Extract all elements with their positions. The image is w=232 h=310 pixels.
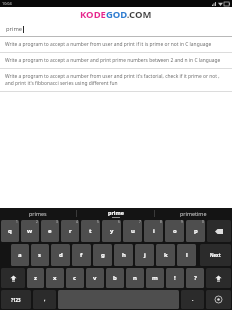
staticText: primetime: [180, 210, 207, 217]
staticText: 5: [97, 220, 99, 224]
staticText: ,: [44, 296, 46, 303]
staticText: 8: [160, 220, 162, 224]
button[interactable]: d: [51, 244, 70, 266]
button[interactable]: c: [66, 268, 84, 288]
button[interactable]: x: [46, 268, 64, 288]
button[interactable]: o: [165, 220, 184, 242]
button[interactable]: .: [181, 290, 204, 309]
staticText: l: [186, 251, 188, 259]
button[interactable]: f: [72, 244, 91, 266]
button[interactable]: n: [126, 268, 144, 288]
staticText: t: [89, 227, 92, 235]
button[interactable]: r: [61, 220, 79, 242]
button[interactable]: prime: [0, 22, 232, 37]
button[interactable]: Write a program to accept a number from …: [0, 69, 232, 92]
staticText: k: [164, 251, 168, 259]
staticText: x: [53, 274, 57, 282]
button[interactable]: ,: [33, 290, 56, 309]
staticText: i: [153, 227, 155, 235]
button[interactable]: Write a program to accept a number from …: [0, 37, 232, 53]
button[interactable]: Write a program to accept a number and p…: [0, 53, 232, 69]
button[interactable]: a: [11, 244, 29, 266]
staticText: p: [194, 227, 198, 235]
button[interactable]: t: [81, 220, 100, 242]
staticText: s: [38, 251, 42, 259]
staticText: Write a program to accept a number and p…: [5, 57, 221, 64]
staticText: 1: [16, 220, 18, 224]
staticText: m: [152, 274, 158, 282]
button[interactable]: primes: [0, 208, 76, 219]
staticText: o: [173, 227, 177, 235]
button[interactable]: g: [93, 244, 112, 266]
staticText: 7: [139, 220, 141, 224]
staticText: n: [133, 274, 137, 282]
staticText: 10:04: [2, 1, 12, 6]
button[interactable]: e: [41, 220, 59, 242]
staticText: KODEGOD.COM: [80, 8, 152, 21]
staticText: 6: [118, 220, 120, 224]
staticText: q: [8, 227, 12, 235]
button[interactable]: Delete: [207, 220, 231, 242]
staticText: e: [48, 227, 52, 235]
staticText: ?: [194, 274, 197, 282]
button[interactable]: s: [31, 244, 49, 266]
staticText: w: [27, 227, 33, 235]
staticText: d: [59, 251, 63, 259]
button[interactable]: primetime: [155, 208, 232, 219]
button[interactable]: !: [166, 268, 184, 288]
staticText: v: [93, 274, 97, 282]
staticText: 3: [56, 220, 58, 224]
staticText: z: [34, 274, 37, 282]
button[interactable]: h: [114, 244, 133, 266]
staticText: primes: [29, 210, 47, 217]
button[interactable]: j: [135, 244, 154, 266]
button[interactable]: Shift: [1, 268, 25, 288]
button[interactable]: y: [102, 220, 121, 242]
button[interactable]: q: [1, 220, 19, 242]
button[interactable]: p: [186, 220, 205, 242]
staticText: prime: [6, 25, 23, 33]
button[interactable]: i: [144, 220, 163, 242]
staticText: b: [113, 274, 117, 282]
staticText: prime: [108, 209, 124, 216]
staticText: 9: [181, 220, 183, 224]
staticText: Next: [210, 252, 221, 258]
button[interactable]: ?: [186, 268, 204, 288]
button[interactable]: ?123: [1, 290, 31, 309]
staticText: 2: [36, 220, 38, 224]
staticText: !: [174, 274, 176, 282]
staticText: Write a program to accept a number from …: [5, 73, 227, 87]
staticText: a: [18, 251, 22, 259]
button[interactable]: z: [27, 268, 44, 288]
staticText: Write a program to accept a number from …: [5, 41, 212, 48]
button[interactable]: b: [106, 268, 124, 288]
staticText: ?123: [11, 297, 21, 303]
button[interactable]: v: [86, 268, 104, 288]
button[interactable]: k: [156, 244, 175, 266]
button[interactable]: w: [21, 220, 39, 242]
staticText: r: [69, 227, 72, 235]
button[interactable]: u: [123, 220, 142, 242]
button[interactable]: Voice input: [206, 290, 231, 309]
staticText: 0: [202, 220, 204, 224]
button[interactable]: prime: [77, 208, 154, 219]
button[interactable]: m: [146, 268, 164, 288]
staticText: h: [122, 251, 126, 259]
button[interactable]: Shift: [206, 268, 231, 288]
staticText: j: [144, 251, 146, 259]
staticText: 4: [76, 220, 78, 224]
staticText: c: [73, 274, 77, 282]
button[interactable]: l: [177, 244, 196, 266]
staticText: g: [101, 251, 105, 259]
staticText: .: [192, 296, 194, 303]
button[interactable]: Next: [200, 244, 231, 266]
staticText: y: [110, 227, 114, 235]
staticText: u: [131, 227, 135, 235]
staticText: f: [80, 251, 83, 259]
